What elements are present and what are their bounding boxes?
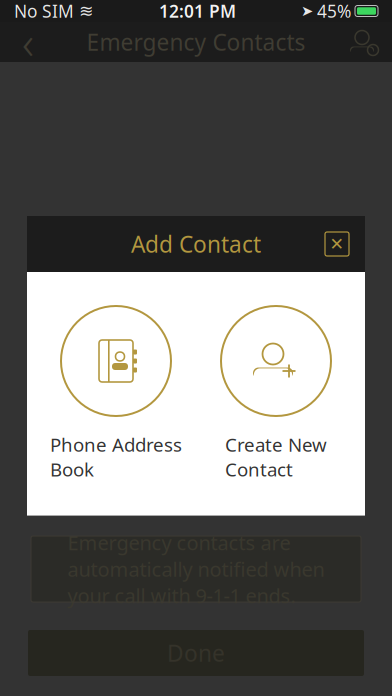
staticText: 45% <box>317 0 351 22</box>
staticText: ✕ <box>329 234 344 254</box>
staticText: No SIM <box>14 0 74 22</box>
staticText: ➤ <box>301 3 313 19</box>
staticText: Emergency Contacts <box>86 27 305 57</box>
staticText: 12:01 PM <box>159 0 236 22</box>
button[interactable]: Phone Address Book <box>36 306 196 482</box>
staticText: ‹ <box>22 12 34 72</box>
staticText: Phone Address Book <box>50 432 182 482</box>
staticText: Add Contact <box>131 229 261 259</box>
button[interactable]: Back <box>6 20 50 64</box>
staticText: ≋ <box>79 1 94 21</box>
button[interactable]: Create New Contact <box>196 306 356 482</box>
staticText: Done <box>167 638 225 668</box>
button[interactable]: Close <box>317 224 357 264</box>
staticText: Emergency contacts are automatically not… <box>67 529 324 609</box>
staticText: Create New Contact <box>225 432 327 482</box>
button[interactable]: Add Contact <box>342 20 386 64</box>
